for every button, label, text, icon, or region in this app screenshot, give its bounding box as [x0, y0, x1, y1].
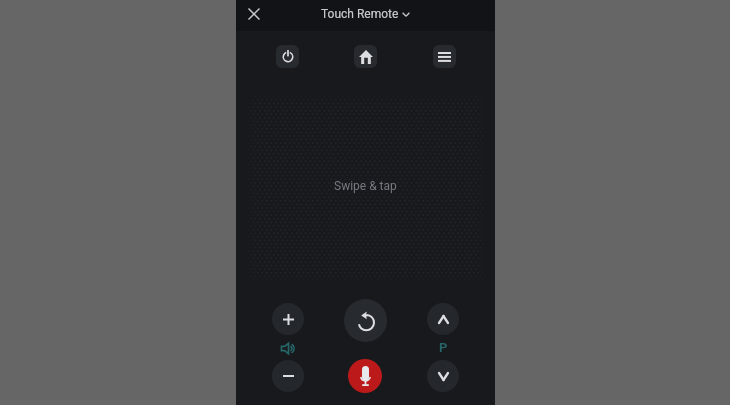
button[interactable]: Home [354, 45, 377, 68]
button[interactable]: Back [344, 299, 387, 342]
button[interactable]: Channel down [427, 360, 459, 392]
button[interactable]: Menu [433, 45, 456, 68]
button[interactable]: Touch Remote [318, 4, 413, 24]
button[interactable]: Volume down [272, 360, 304, 392]
button[interactable]: Close [241, 1, 267, 27]
button[interactable]: Channel up [427, 303, 459, 335]
staticText: Swipe & tap [334, 179, 397, 193]
staticText: P [439, 340, 448, 355]
button[interactable]: Voice search [348, 359, 382, 393]
button[interactable]: Power [276, 45, 299, 68]
button[interactable]: Volume up [272, 303, 304, 335]
button[interactable]: Swipe & tap [236, 88, 495, 288]
staticText: Touch Remote [321, 7, 399, 21]
